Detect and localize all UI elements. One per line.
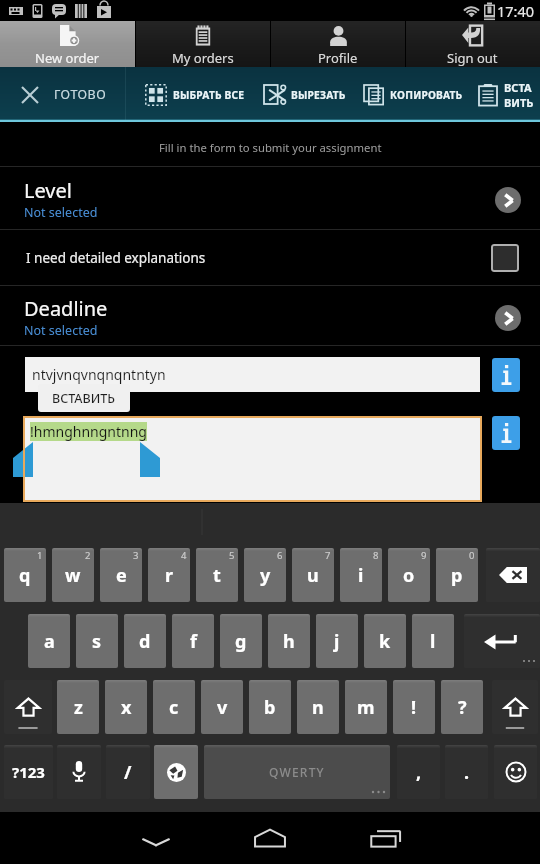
- button[interactable]: ?123: [4, 745, 53, 799]
- staticText: l: [430, 629, 436, 654]
- button[interactable]: Emoji: [494, 745, 537, 799]
- button[interactable]: c: [153, 680, 195, 734]
- staticText: 3: [133, 549, 139, 562]
- button[interactable]: s: [76, 614, 118, 668]
- button[interactable]: Done: [0, 67, 125, 122]
- button[interactable]: ?: [441, 680, 483, 734]
- button[interactable]: Info: [492, 358, 520, 392]
- staticText: Level: [24, 177, 72, 204]
- button[interactable]: Sign out: [405, 21, 540, 67]
- button[interactable]: ВСТАВИТЬ: [38, 384, 130, 412]
- button[interactable]: !hmnghnngntnng: [23, 416, 482, 502]
- staticText: Not selected: [24, 204, 98, 221]
- staticText: 4: [181, 549, 187, 562]
- button[interactable]: w: [52, 548, 94, 602]
- staticText: New order: [35, 49, 100, 67]
- button[interactable]: r: [148, 548, 190, 602]
- button[interactable]: v: [201, 680, 243, 734]
- button[interactable]: ntvjvnqvnqnqntntyn: [25, 357, 480, 392]
- button[interactable]: g: [220, 614, 262, 668]
- button[interactable]: x: [105, 680, 147, 734]
- staticText: r: [165, 563, 174, 588]
- button[interactable]: I need detailed explanations: [0, 230, 540, 285]
- staticText: ntvjvnqvnqnqntntyn: [32, 365, 166, 384]
- staticText: I need detailed explanations: [26, 249, 206, 267]
- button[interactable]: o: [388, 548, 430, 602]
- button[interactable]: l: [412, 614, 454, 668]
- staticText: y: [260, 563, 271, 588]
- staticText: 2: [85, 549, 91, 562]
- button[interactable]: ,: [397, 745, 440, 799]
- button[interactable]: Space: [204, 745, 390, 799]
- staticText: ВИТЬ: [504, 95, 534, 110]
- other: Select all: [145, 84, 167, 106]
- staticText: v: [217, 695, 228, 720]
- staticText: i: [358, 563, 364, 588]
- staticText: a: [44, 629, 55, 654]
- staticText: ,: [416, 760, 422, 785]
- button[interactable]: !: [393, 680, 435, 734]
- button[interactable]: Deadline: [0, 286, 540, 345]
- staticText: !: [411, 695, 417, 720]
- other: Done: [21, 86, 39, 104]
- button[interactable]: k: [364, 614, 406, 668]
- button[interactable]: u: [292, 548, 334, 602]
- staticText: 7: [325, 549, 331, 562]
- button[interactable]: Home: [225, 816, 315, 860]
- staticText: 9: [421, 549, 427, 562]
- button[interactable]: n: [297, 680, 339, 734]
- staticText: m: [357, 695, 375, 720]
- staticText: d: [139, 629, 151, 654]
- button[interactable]: Paste: [470, 67, 540, 122]
- button[interactable]: t: [196, 548, 238, 602]
- other: Emoji: [505, 761, 527, 783]
- button[interactable]: Profile: [270, 21, 405, 67]
- button[interactable]: /: [106, 745, 150, 799]
- button[interactable]: Shift: [492, 680, 538, 734]
- button[interactable]: Shift: [4, 680, 52, 734]
- button[interactable]: Copy: [353, 67, 470, 122]
- button[interactable]: b: [249, 680, 291, 734]
- button[interactable]: f: [172, 614, 214, 668]
- button[interactable]: Cut: [253, 67, 353, 122]
- button[interactable]: z: [57, 680, 99, 734]
- button[interactable]: Backspace: [486, 548, 540, 602]
- button[interactable]: Hide keyboard: [111, 820, 201, 864]
- staticText: j: [334, 629, 340, 654]
- button[interactable]: p: [436, 548, 478, 602]
- staticText: h: [283, 629, 295, 654]
- staticText: ВЫБРАТЬ ВСЕ: [173, 88, 245, 102]
- button[interactable]: Change language: [154, 745, 198, 799]
- button[interactable]: .: [445, 745, 488, 799]
- staticText: e: [116, 563, 127, 588]
- button[interactable]: Open Deadline: [495, 305, 521, 331]
- staticText: QWERTY: [269, 764, 325, 780]
- button[interactable]: m: [345, 680, 387, 734]
- staticText: b: [264, 695, 276, 720]
- button[interactable]: New order: [0, 21, 135, 67]
- button[interactable]: Open Level: [495, 187, 521, 213]
- staticText: 8: [373, 549, 379, 562]
- button[interactable]: a: [28, 614, 70, 668]
- button[interactable]: Enter: [464, 614, 540, 668]
- button[interactable]: y: [244, 548, 286, 602]
- button[interactable]: Voice input: [57, 745, 101, 799]
- button[interactable]: i: [340, 548, 382, 602]
- button[interactable]: j: [316, 614, 358, 668]
- button[interactable]: Recent apps: [341, 816, 431, 860]
- button[interactable]: e: [100, 548, 142, 602]
- staticText: s: [92, 629, 102, 654]
- staticText: ?: [458, 695, 467, 720]
- button[interactable]: q: [4, 548, 46, 602]
- button[interactable]: My orders: [135, 21, 270, 67]
- staticText: /: [124, 760, 132, 785]
- staticText: g: [235, 629, 247, 654]
- button[interactable]: Select all: [135, 67, 253, 122]
- other: Paste: [478, 84, 498, 106]
- staticText: ВСТА: [504, 80, 532, 95]
- staticText: w: [65, 563, 81, 588]
- button[interactable]: d: [124, 614, 166, 668]
- button[interactable]: Info: [492, 416, 520, 450]
- button[interactable]: h: [268, 614, 310, 668]
- button[interactable]: Level: [0, 167, 540, 229]
